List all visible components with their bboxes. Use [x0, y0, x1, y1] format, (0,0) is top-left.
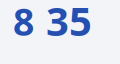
staticText: 35 — [46, 0, 92, 47]
staticText: 8 — [13, 0, 34, 46]
